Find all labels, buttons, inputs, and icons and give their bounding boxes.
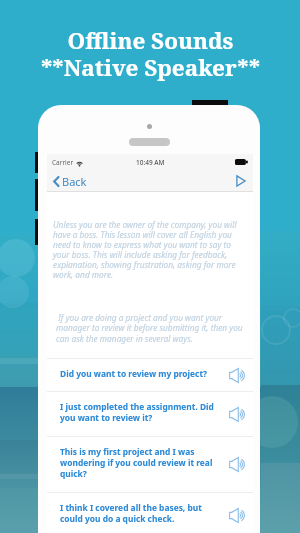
staticText: Unless you are the owner of the company,… [53,219,245,281]
other: Play audio [229,368,245,383]
staticText: Carrier [52,158,74,167]
button[interactable]: This is my first project and I was wonde… [47,437,253,492]
staticText: Offline Sounds **Native Speaker** [41,25,260,82]
staticText: Did you want to review my project? [60,368,225,379]
staticText: 10:49 AM [136,158,165,167]
staticText: I just completed the assignment. Did you… [60,401,225,423]
other: Play audio [229,407,245,422]
staticText: If you are doing a project and you want … [56,312,243,345]
staticText: I think I covered all the bases, but cou… [60,502,225,524]
other: Play audio [229,457,245,472]
button[interactable]: Play [236,175,253,187]
staticText: This is my first project and I was wonde… [60,446,225,479]
staticText: Back [62,174,87,189]
other: Play audio [229,508,245,523]
button[interactable]: I just completed the assignment. Did you… [47,392,253,436]
button[interactable]: I think I covered all the bases, but cou… [47,493,253,533]
button[interactable]: Back [47,174,97,189]
button[interactable]: Did you want to review my project? [47,359,253,391]
